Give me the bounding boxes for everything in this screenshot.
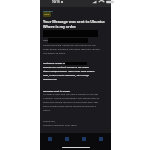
staticText: finally was telling me only to print lab… xyxy=(43,100,98,103)
staticText: Reason for Contact: Where is my order xyxy=(43,65,89,68)
button[interactable]: Delete xyxy=(60,133,74,144)
staticText: you within 48 hours. xyxy=(43,51,66,54)
button[interactable]: Move xyxy=(94,133,108,144)
staticText: Your Message was sent to Ubuntu: xyxy=(43,19,105,24)
staticText: Message sent to seller: xyxy=(43,89,71,92)
staticText: Item number/name: 5pcs PLED Mini Fridge xyxy=(43,69,95,72)
staticText: Thank you, xyxy=(43,119,56,122)
staticText: like it arrived same stories moving by w… xyxy=(43,104,97,107)
staticText: Walmart Customer Care Team xyxy=(43,123,77,126)
staticText: Grill, 8 Can A/C001 Wireless, Tall Gras(… xyxy=(43,73,89,76)
staticText: Dear xyxy=(43,38,49,41)
button[interactable]: Archive xyxy=(43,133,57,144)
button[interactable]: Mark unread xyxy=(77,133,91,144)
staticText: 10:15 xyxy=(52,0,60,4)
staticText: It's been 8 days and still hasn't moved … xyxy=(43,92,98,95)
staticText: hasn't. xyxy=(43,108,52,111)
staticText: We've contacted Ubuntu on your behalf fo… xyxy=(43,43,96,46)
staticText: Customer Order Number: xyxy=(43,61,74,64)
button[interactable]: Inbox xyxy=(43,12,51,17)
staticText: Where is my order. xyxy=(43,24,77,29)
staticText: a refund. I think my package is lost nei… xyxy=(43,96,100,99)
staticText: Inbox xyxy=(44,13,50,16)
staticText: order below. Someone from their team wil… xyxy=(43,47,100,50)
staticText: 4894076143 xyxy=(43,77,57,80)
staticText: Walmart xyxy=(43,9,53,12)
